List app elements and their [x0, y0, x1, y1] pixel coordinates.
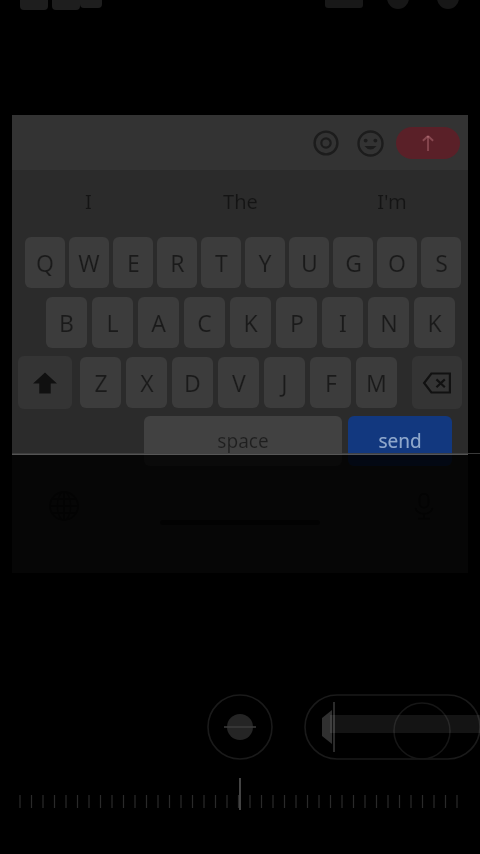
button[interactable]: space [144, 416, 342, 466]
staticText: W [78, 247, 100, 278]
staticText: J [281, 367, 288, 398]
staticText: V [232, 367, 246, 398]
staticText: D [184, 367, 201, 398]
staticText: K [427, 307, 442, 338]
staticText: The [223, 188, 258, 215]
button[interactable]: send [348, 416, 452, 466]
staticText: K [243, 307, 258, 338]
staticText: I [85, 188, 92, 215]
staticText: O [388, 247, 406, 278]
button[interactable]: O [377, 237, 417, 288]
button[interactable]: C [184, 297, 225, 348]
button[interactable]: Z [80, 357, 121, 408]
button[interactable]: A [138, 297, 179, 348]
staticText: E [127, 247, 140, 278]
button[interactable]: N [368, 297, 409, 348]
button[interactable]: U [289, 237, 329, 288]
button[interactable]: K [230, 297, 271, 348]
staticText: A [151, 307, 166, 338]
staticText: B [59, 307, 74, 338]
staticText: R [170, 247, 185, 278]
button[interactable]: Q [25, 237, 65, 288]
staticText: N [380, 307, 398, 338]
staticText: Z [94, 367, 108, 398]
staticText: send [378, 428, 422, 454]
staticText: P [290, 307, 304, 338]
button[interactable]: X [126, 357, 167, 408]
staticText: S [435, 247, 448, 278]
button[interactable]: G [333, 237, 373, 288]
button[interactable]: Send up [396, 127, 460, 159]
button[interactable]: I [322, 297, 363, 348]
staticText: U [301, 247, 318, 278]
staticText: X [140, 367, 154, 398]
button[interactable]: V [218, 357, 259, 408]
staticText: I [339, 307, 347, 338]
staticText: M [366, 367, 387, 398]
button[interactable]: T [201, 237, 241, 288]
button[interactable]: L [92, 297, 133, 348]
button[interactable]: R [157, 237, 197, 288]
button[interactable]: E [113, 237, 153, 288]
button[interactable]: B [46, 297, 87, 348]
staticText: I'm [377, 188, 407, 215]
staticText: space [217, 428, 269, 454]
staticText: T [215, 247, 228, 278]
button[interactable]: F [310, 357, 351, 408]
button[interactable]: Y [245, 237, 285, 288]
button[interactable]: P [276, 297, 317, 348]
button[interactable]: J [264, 357, 305, 408]
staticText: Y [258, 247, 272, 278]
button[interactable]: Backspace [412, 356, 462, 409]
button[interactable]: K [414, 297, 455, 348]
staticText: L [106, 307, 119, 338]
button[interactable]: Mention [304, 121, 348, 165]
staticText: F [325, 367, 337, 398]
button[interactable]: M [356, 357, 397, 408]
staticText: Q [36, 247, 54, 278]
button[interactable]: Emoji [348, 121, 392, 165]
button[interactable]: D [172, 357, 213, 408]
staticText: C [197, 307, 212, 338]
button[interactable]: S [421, 237, 461, 288]
staticText: G [345, 247, 362, 278]
button[interactable]: Shift [18, 356, 72, 409]
button[interactable]: W [69, 237, 109, 288]
